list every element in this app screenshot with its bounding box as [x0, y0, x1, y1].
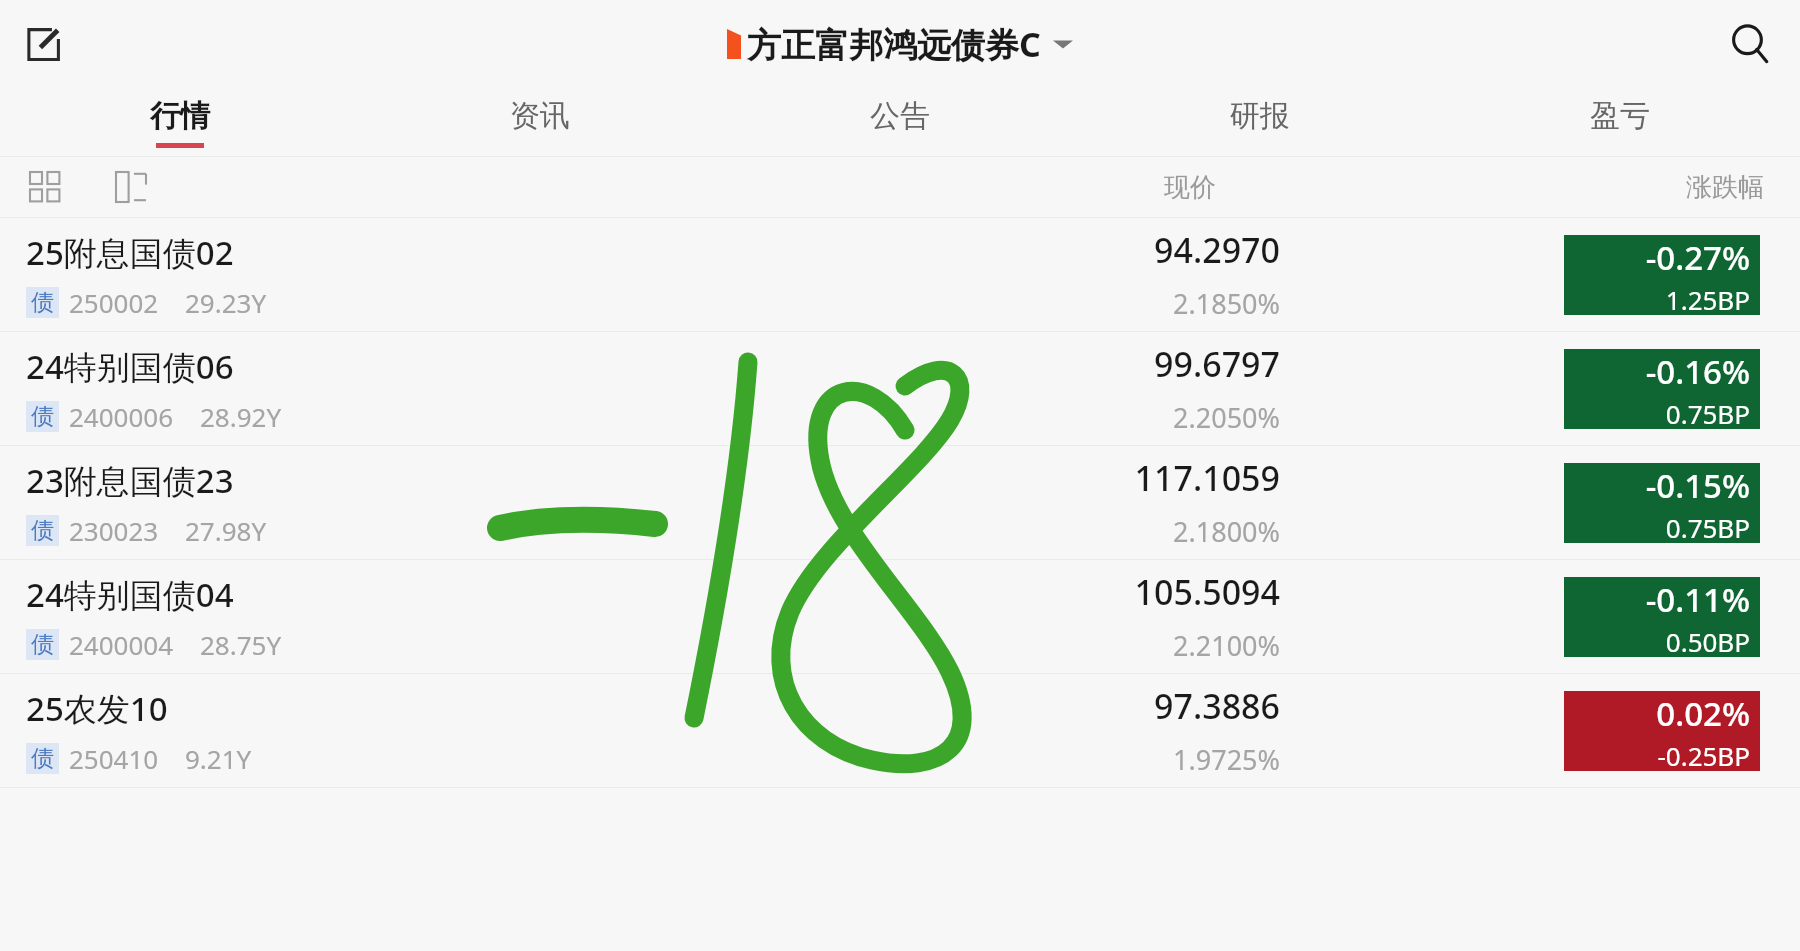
staticText: -0.25BP: [1657, 738, 1750, 771]
staticText: 1.9725%: [1173, 741, 1280, 778]
staticText: 28.75Y: [200, 627, 282, 662]
staticText: 债: [31, 630, 54, 659]
staticText: 0.75BP: [1665, 396, 1750, 429]
button[interactable]: 行情: [0, 88, 360, 156]
staticText: 盈亏: [1590, 97, 1650, 135]
staticText: -0.27%: [1645, 235, 1750, 280]
staticText: 行情: [150, 97, 210, 135]
staticText: 0.50BP: [1665, 624, 1750, 657]
staticText: -0.11%: [1645, 577, 1750, 622]
staticText: 0.75BP: [1665, 510, 1750, 543]
button[interactable]: Grid view: [22, 164, 68, 210]
staticText: 99.6797: [1154, 341, 1280, 387]
staticText: 资讯: [510, 97, 570, 135]
button[interactable]: 24特别国债06: [0, 332, 1800, 445]
button[interactable]: 24特别国债04: [0, 560, 1800, 673]
staticText: 现价: [1164, 171, 1216, 204]
staticText: 105.5094: [1134, 569, 1280, 615]
button[interactable]: 公告: [720, 88, 1080, 156]
button[interactable]: List view: [108, 164, 154, 210]
staticText: 24特别国债06: [26, 344, 234, 389]
staticText: 2.1850%: [1173, 285, 1280, 322]
staticText: 27.98Y: [185, 513, 267, 548]
staticText: 2400006: [69, 399, 174, 434]
staticText: 2400004: [69, 627, 174, 662]
staticText: 2.2100%: [1173, 627, 1280, 664]
staticText: 方正富邦鸿远债券C: [747, 21, 1041, 67]
staticText: 250002: [69, 285, 159, 320]
staticText: 9.21Y: [185, 741, 252, 776]
staticText: 0.02%: [1656, 691, 1750, 736]
staticText: 债: [31, 288, 54, 317]
staticText: 2.1800%: [1173, 513, 1280, 550]
staticText: 债: [31, 402, 54, 431]
staticText: -0.15%: [1645, 463, 1750, 508]
staticText: 涨跌幅: [1686, 171, 1764, 204]
button[interactable]: 盈亏: [1440, 88, 1800, 156]
staticText: 29.23Y: [185, 285, 267, 320]
staticText: 25农发10: [26, 686, 168, 731]
staticText: 债: [31, 744, 54, 773]
staticText: 250410: [69, 741, 159, 776]
button[interactable]: 25农发10: [0, 674, 1800, 787]
staticText: 230023: [69, 513, 159, 548]
button[interactable]: Edit: [16, 16, 72, 72]
staticText: 研报: [1230, 97, 1290, 135]
staticText: 94.2970: [1154, 227, 1280, 273]
staticText: 公告: [870, 97, 930, 135]
staticText: 28.92Y: [200, 399, 282, 434]
staticText: 债: [31, 516, 54, 545]
button[interactable]: 25附息国债02: [0, 218, 1800, 331]
button[interactable]: 23附息国债23: [0, 446, 1800, 559]
staticText: 117.1059: [1134, 455, 1280, 501]
staticText: 97.3886: [1154, 683, 1280, 729]
staticText: 1.25BP: [1665, 282, 1750, 315]
button[interactable]: 研报: [1080, 88, 1440, 156]
button[interactable]: 方正富邦鸿远债券C: [727, 21, 1073, 67]
staticText: 25附息国债02: [26, 230, 234, 275]
staticText: -0.16%: [1645, 349, 1750, 394]
staticText: 23附息国债23: [26, 458, 234, 503]
staticText: 24特别国债04: [26, 572, 234, 617]
button[interactable]: Search: [1720, 14, 1780, 74]
staticText: 2.2050%: [1173, 399, 1280, 436]
button[interactable]: 资讯: [360, 88, 720, 156]
